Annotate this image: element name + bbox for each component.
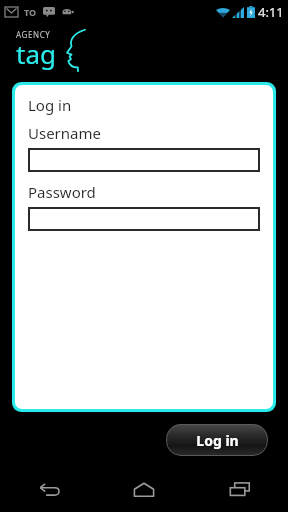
staticText: Log in — [196, 431, 239, 450]
staticText: TO — [24, 6, 37, 18]
staticText: Log in — [28, 95, 72, 115]
staticText: 4:11 — [258, 3, 284, 21]
staticText: Password — [28, 182, 96, 202]
button[interactable]: Home — [96, 466, 192, 512]
staticText: Username — [28, 123, 101, 143]
button[interactable]: Log in — [166, 424, 268, 456]
staticText: AGENCY — [16, 29, 51, 40]
button[interactable] — [28, 148, 260, 172]
button[interactable]: Back — [0, 466, 96, 512]
button[interactable]: Recent apps — [192, 466, 288, 512]
button[interactable] — [28, 207, 260, 231]
staticText: tag — [16, 36, 56, 71]
